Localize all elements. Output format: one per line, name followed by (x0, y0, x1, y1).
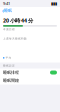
staticText: ‹ (2, 6, 4, 15)
staticText: 上週每天睡眠時數 (3, 37, 27, 40)
staticText: 睡眠設定 (3, 64, 15, 67)
staticText: 平均 (5, 56, 11, 59)
staticText: 睡眠排程 (3, 70, 19, 75)
staticText: 9:41 (3, 1, 10, 6)
staticText: 睡眠鬧鐘 (3, 78, 19, 83)
button[interactable]: ‹ (2, 6, 12, 15)
button[interactable]: 睡眠鬧鐘 (0, 76, 60, 84)
staticText: ▮▮▮ (51, 1, 57, 6)
staticText: 本週目標 (3, 28, 15, 31)
staticText: 20 小時 44 分 (3, 17, 33, 24)
button[interactable]: 睡眠排程 (0, 68, 60, 76)
staticText: 睡眠 (4, 8, 12, 13)
